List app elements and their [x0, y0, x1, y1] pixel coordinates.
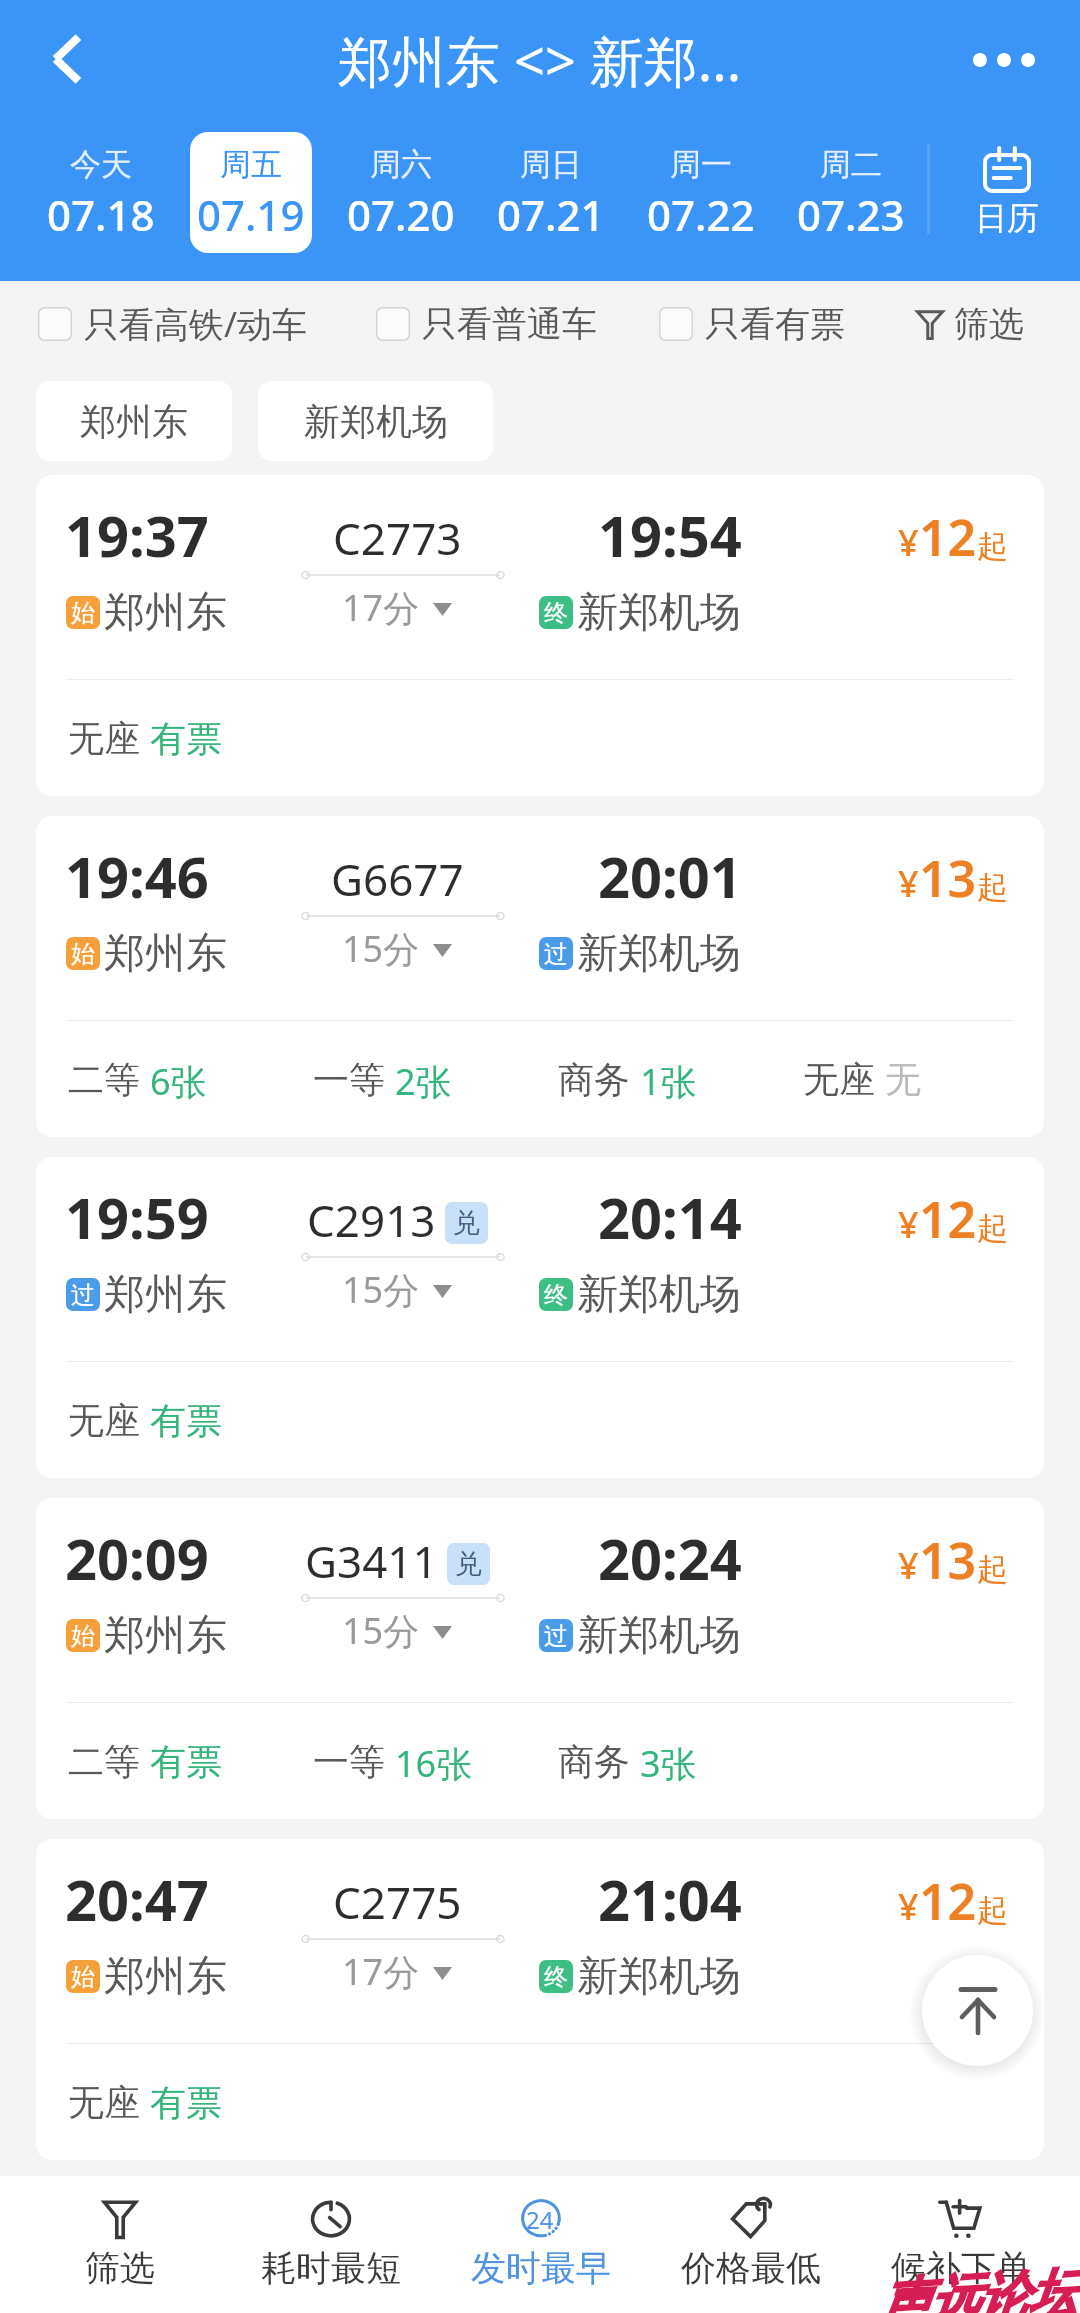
staticText: C2913 [307, 1190, 436, 1250]
staticText: 始 [71, 598, 95, 628]
staticText: G3411 [305, 1531, 438, 1591]
staticText: 筛选 [85, 2246, 155, 2290]
staticText: 终 [544, 598, 568, 628]
staticText: 过 [71, 1280, 95, 1310]
staticText: 声远论坛 [876, 2260, 1080, 2313]
staticText: 郑州东 <> 新郑... [338, 23, 742, 97]
button[interactable]: 周二 [790, 132, 912, 253]
staticText: 始 [71, 1621, 95, 1651]
button[interactable]: 价格最低 [646, 2176, 856, 2313]
staticText: G6677 [331, 849, 464, 909]
staticText: 二等 [68, 1057, 140, 1102]
staticText: 无座 [68, 2080, 140, 2125]
staticText: 07.21 [497, 186, 605, 243]
staticText: 15分 [342, 1265, 420, 1314]
staticText: 19:46 [65, 838, 209, 914]
staticText: 今天 [70, 145, 132, 184]
button[interactable]: 郑州东 [36, 381, 232, 461]
staticText: 终 [544, 1962, 568, 1992]
button[interactable]: Back to top [922, 1955, 1033, 2066]
staticText: 只看普通车 [422, 302, 597, 346]
staticText: 19:54 [598, 497, 742, 573]
staticText: 兑 [455, 1547, 482, 1581]
staticText: 起 [977, 527, 1008, 566]
staticText: 只看有票 [705, 302, 845, 346]
button[interactable]: 今天 [40, 132, 162, 253]
button[interactable]: 筛选 [916, 302, 1024, 346]
staticText: 一等 [313, 1057, 385, 1102]
staticText: 07.20 [347, 186, 455, 243]
button[interactable]: 19:37 [36, 475, 1044, 796]
staticText: 兑 [453, 1206, 480, 1240]
staticText: 郑州东 [104, 587, 227, 639]
button[interactable]: Back [24, 21, 108, 105]
staticText: 有票 [150, 2080, 222, 2125]
staticText: 07.23 [797, 186, 905, 243]
staticText: 二等 [68, 1739, 140, 1784]
staticText: 20:24 [598, 1520, 742, 1596]
button[interactable]: 周日 [490, 132, 612, 253]
staticText: 周六 [370, 145, 432, 184]
staticText: ¥ [898, 859, 919, 908]
staticText: 周五 [220, 145, 282, 184]
staticText: 周一 [670, 145, 732, 184]
staticText: 无座 [803, 1057, 875, 1102]
staticText: 商务 [558, 1057, 630, 1102]
button[interactable]: 24 [436, 2176, 646, 2313]
button[interactable]: 耗时最短 [225, 2176, 436, 2313]
staticText: 起 [977, 1891, 1008, 1930]
staticText: 郑州东 [104, 1951, 227, 2003]
staticText: 20:47 [65, 1861, 209, 1937]
staticText: 07.19 [197, 186, 305, 243]
staticText: 新郑机场 [577, 1951, 741, 2003]
button[interactable]: 20:09 [36, 1498, 1044, 1819]
staticText: 07.22 [647, 186, 755, 243]
staticText: C2775 [333, 1872, 462, 1932]
staticText: 新郑机场 [577, 1610, 741, 1662]
staticText: 新郑机场 [304, 399, 448, 444]
staticText: 1张 [640, 1057, 697, 1106]
staticText: 17分 [342, 583, 420, 632]
staticText: ¥ [898, 1541, 919, 1590]
staticText: 新郑机场 [577, 1269, 741, 1321]
staticText: 19:59 [65, 1179, 209, 1255]
staticText: 周日 [520, 145, 582, 184]
button[interactable]: 筛选 [14, 2176, 225, 2313]
staticText: 无座 [68, 1398, 140, 1443]
button[interactable]: 候补下单 [856, 2176, 1066, 2313]
button[interactable]: 新郑机场 [258, 381, 493, 461]
staticText: 一等 [313, 1739, 385, 1784]
staticText: 20:14 [598, 1179, 742, 1255]
button[interactable]: 20:47 [36, 1839, 1044, 2160]
button[interactable]: 只看有票 [659, 302, 845, 346]
button[interactable]: 周五 [190, 132, 312, 253]
staticText: 无座 [68, 716, 140, 761]
staticText: 价格最低 [681, 2246, 821, 2290]
staticText: 起 [977, 1209, 1008, 1248]
staticText: 21:04 [598, 1861, 742, 1937]
staticText: 郑州东 [104, 1610, 227, 1662]
staticText: 有票 [150, 716, 222, 761]
staticText: 筛选 [954, 302, 1024, 346]
staticText: 6张 [150, 1057, 207, 1106]
button[interactable]: Calendar [903, 125, 1080, 281]
staticText: 19:37 [65, 497, 209, 573]
button[interactable]: 周一 [640, 132, 762, 253]
button[interactable]: 只看高铁/动车 [38, 300, 308, 348]
button[interactable]: More options [962, 21, 1046, 105]
button[interactable]: 周六 [340, 132, 462, 253]
staticText: 终 [544, 1280, 568, 1310]
staticText: 发时最早 [471, 2246, 611, 2290]
staticText: 郑州东 [104, 928, 227, 980]
button[interactable]: 只看普通车 [376, 302, 597, 346]
staticText: 起 [977, 868, 1008, 907]
button[interactable]: 19:46 [36, 816, 1044, 1137]
staticText: C2773 [333, 508, 462, 568]
button[interactable]: 19:59 [36, 1157, 1044, 1478]
staticText: 耗时最短 [261, 2246, 401, 2290]
staticText: 07.18 [47, 186, 155, 243]
staticText: ¥ [898, 518, 919, 567]
staticText: 12 [919, 1867, 977, 1935]
staticText: 只看高铁/动车 [84, 300, 308, 348]
staticText: 24 [526, 2203, 554, 2236]
